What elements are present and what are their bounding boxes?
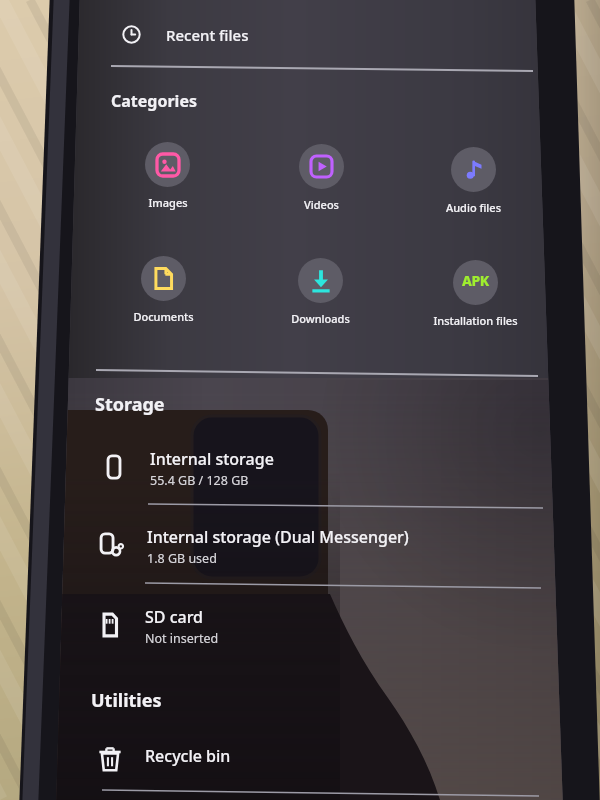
staticText: Categories — [111, 90, 197, 112]
staticText: Videos — [304, 197, 339, 212]
staticText: Not inserted — [145, 630, 219, 647]
staticText: Storage — [95, 392, 165, 417]
staticText: Installation files — [433, 313, 518, 328]
button[interactable] — [82, 727, 512, 791]
button[interactable]: Documents — [113, 256, 213, 326]
button[interactable] — [82, 593, 512, 657]
staticText: SD card — [145, 606, 204, 628]
staticText: Downloads — [291, 311, 350, 326]
staticText: 55.4 GB / 128 GB — [150, 472, 249, 489]
button[interactable]: Videos — [271, 144, 371, 214]
button[interactable]: Recent files — [100, 12, 430, 57]
staticText: Images — [148, 195, 188, 210]
staticText: Internal storage (Dual Messenger) — [147, 526, 409, 548]
button[interactable]: Images — [117, 142, 217, 212]
button[interactable]: Installation files — [425, 260, 525, 330]
button[interactable] — [86, 435, 516, 499]
staticText: Internal storage — [150, 448, 274, 470]
staticText: APK — [462, 271, 489, 290]
staticText: Utilities — [91, 688, 162, 713]
staticText: Recycle bin — [145, 745, 231, 767]
staticText: Documents — [133, 309, 194, 324]
button[interactable]: Downloads — [270, 258, 370, 328]
button[interactable]: Audio files — [423, 147, 523, 217]
staticText: 1.8 GB used — [147, 550, 217, 567]
button[interactable] — [84, 513, 514, 577]
staticText: Audio files — [446, 200, 501, 215]
staticText: Recent files — [166, 25, 249, 45]
